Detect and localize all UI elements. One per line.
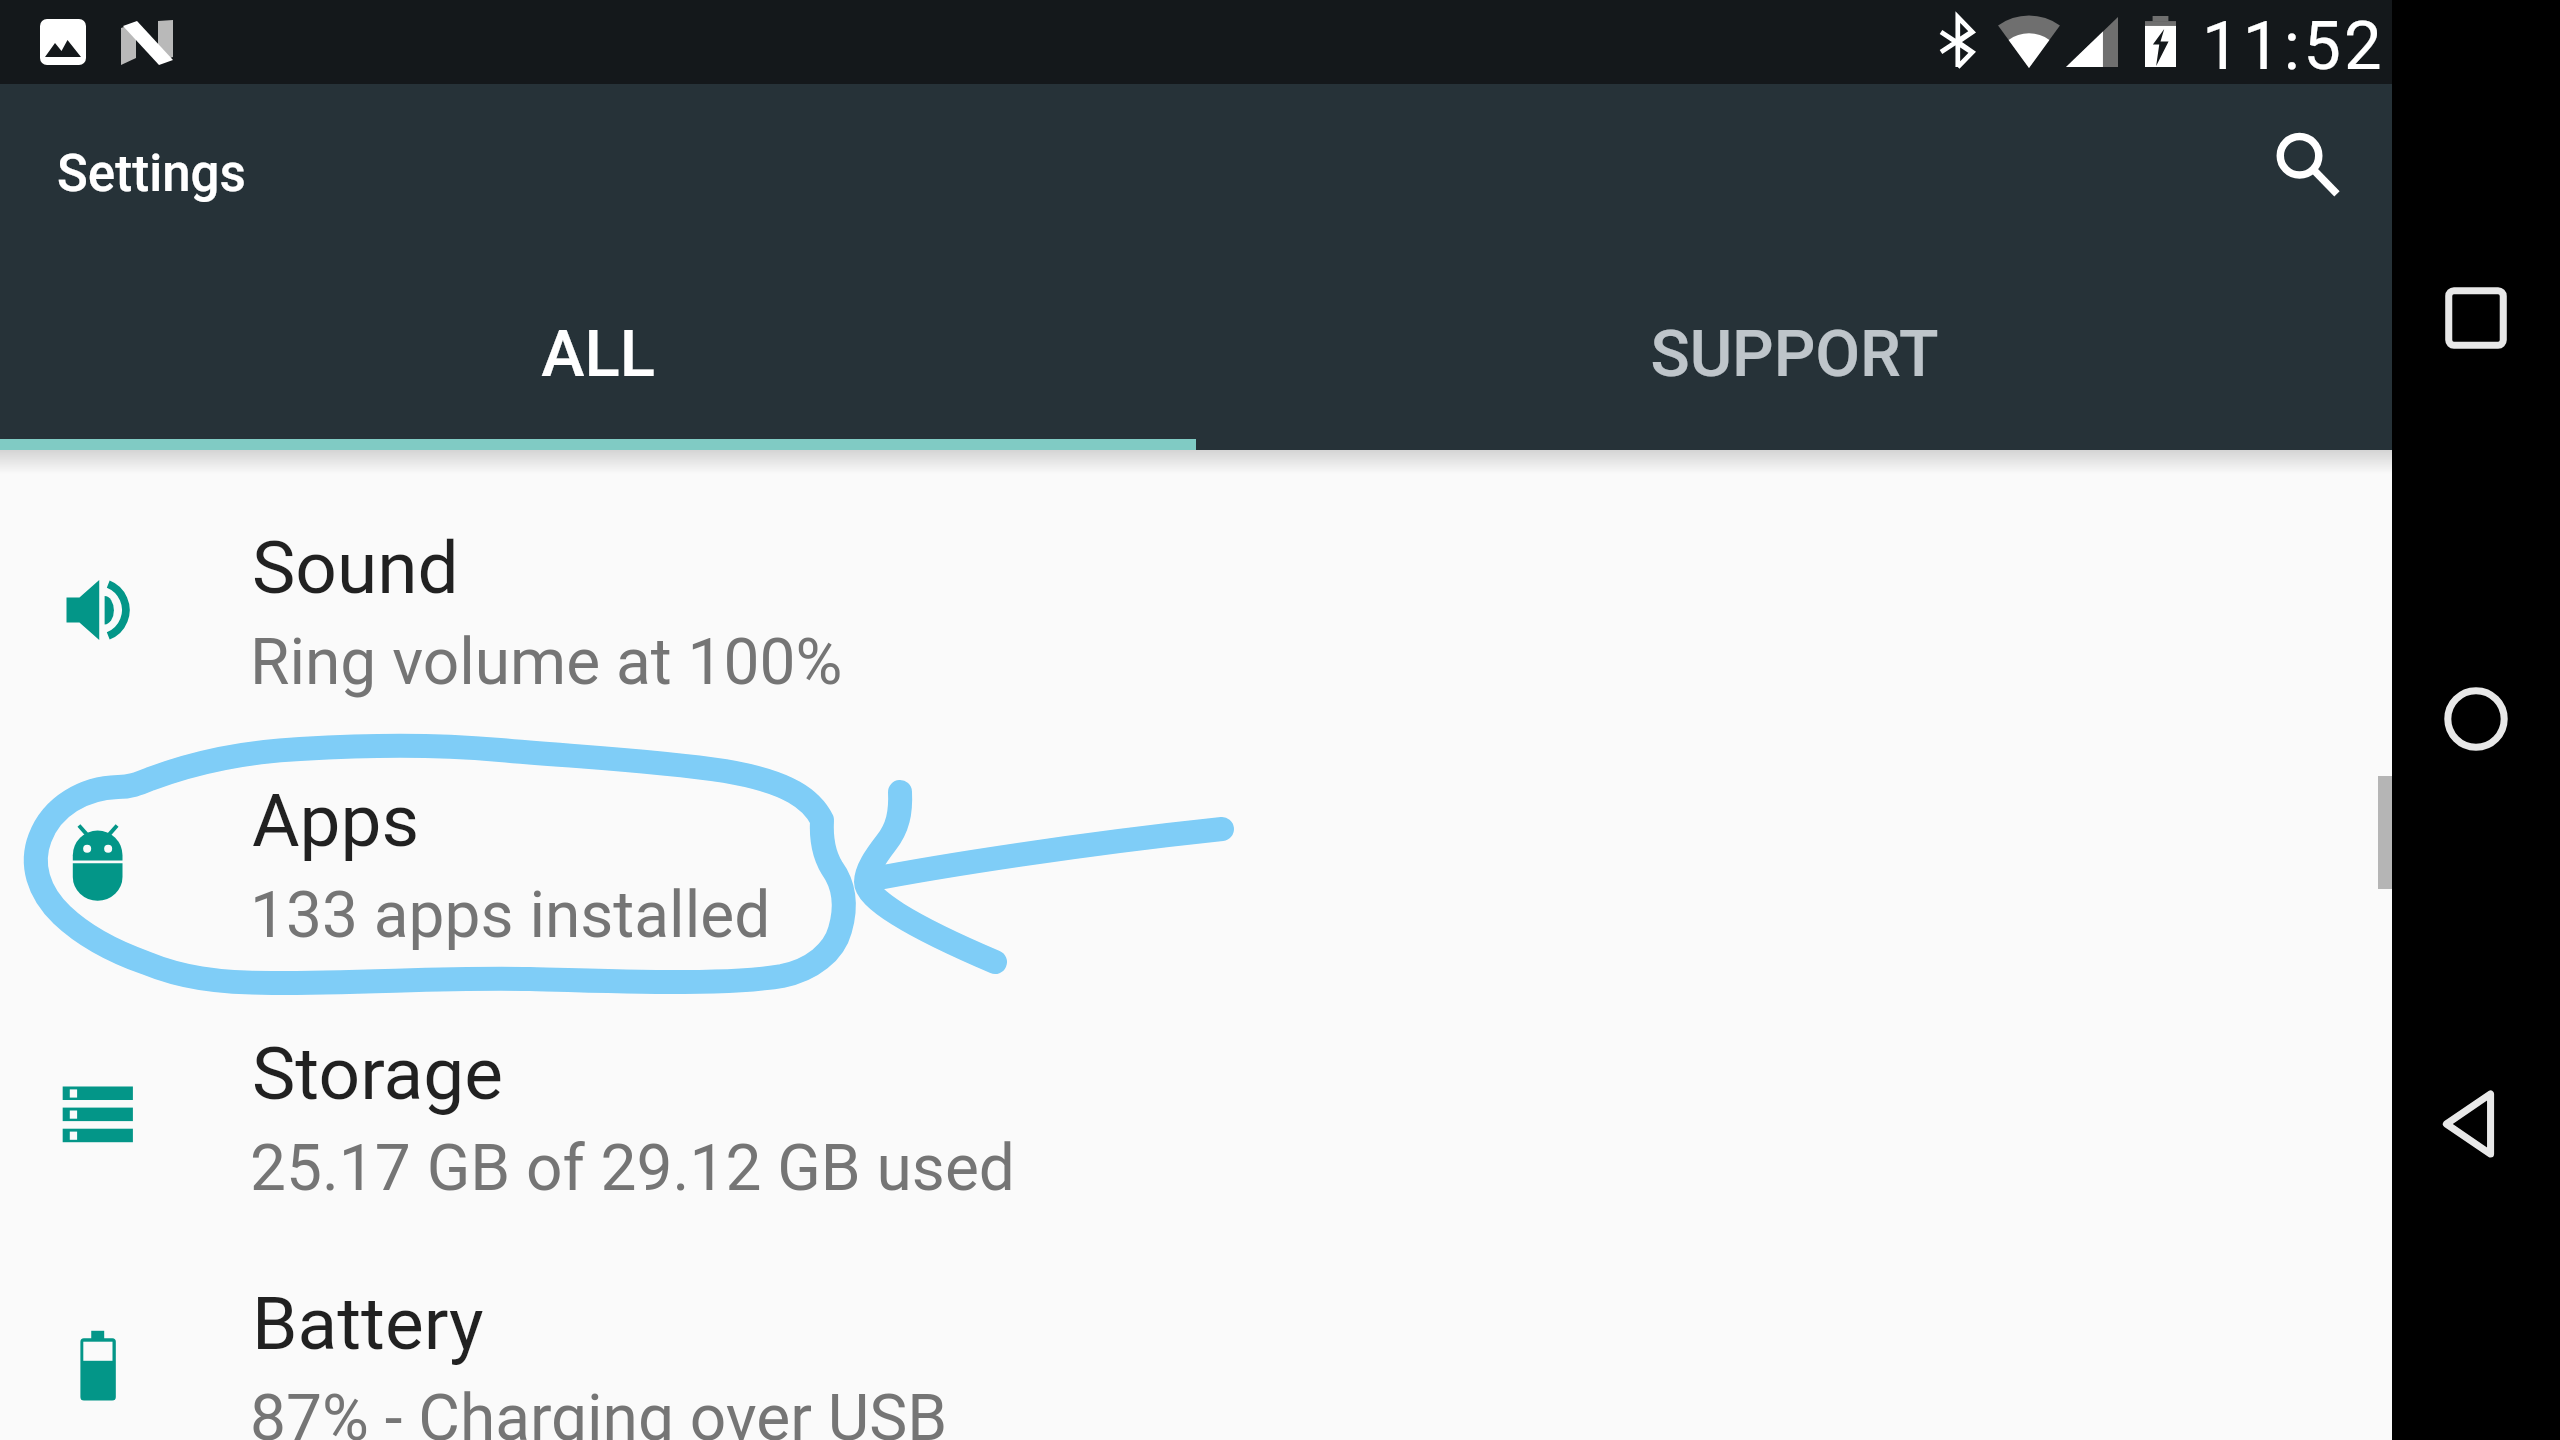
button[interactable]: Sound	[0, 469, 2392, 721]
staticText: Apps	[252, 778, 420, 864]
staticText: 25.17 GB of 29.12 GB used	[250, 1131, 1015, 1206]
button[interactable]: Battery	[0, 1225, 2392, 1440]
button[interactable]: Storage	[0, 975, 2392, 1227]
staticText: 87% - Charging over USB	[250, 1381, 948, 1440]
button[interactable]: Search	[2252, 108, 2348, 204]
button[interactable]: Recents	[2429, 271, 2523, 365]
staticText: Sound	[252, 525, 459, 611]
staticText: Battery	[252, 1281, 484, 1367]
button[interactable]: Home	[2429, 672, 2523, 766]
staticText: 11:52	[2202, 7, 2385, 86]
button[interactable]: SUPPORT	[1196, 296, 2392, 416]
staticText: SUPPORT	[1650, 316, 1939, 392]
staticText: Storage	[252, 1031, 503, 1117]
button[interactable]: ALL	[0, 296, 1196, 416]
button[interactable]: Apps	[0, 722, 2392, 974]
staticText: Settings	[57, 144, 246, 204]
staticText: 133 apps installed	[250, 878, 771, 953]
staticText: Ring volume at 100%	[250, 625, 843, 700]
staticText: ALL	[541, 316, 655, 392]
button[interactable]: Back	[2429, 1077, 2523, 1171]
